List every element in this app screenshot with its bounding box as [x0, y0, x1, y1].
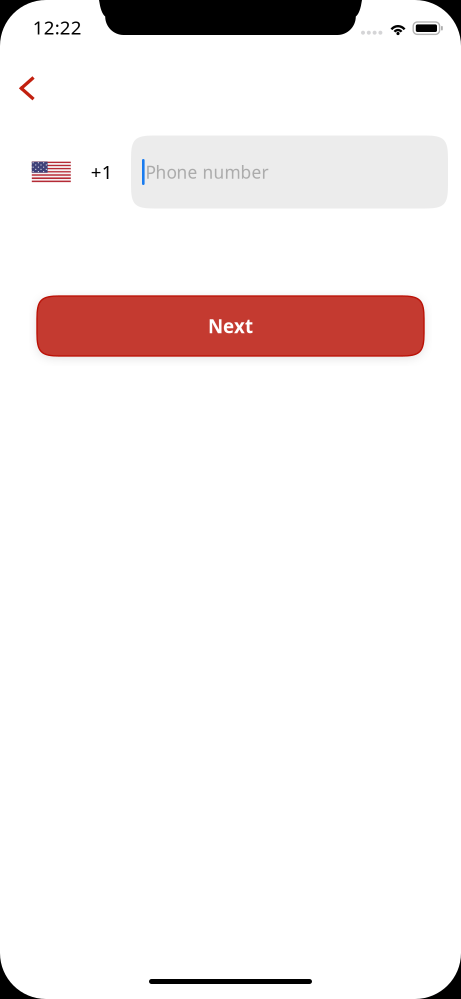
button[interactable]: Back: [3, 66, 51, 110]
staticText: Next: [208, 314, 253, 338]
button[interactable]: Next: [37, 296, 424, 356]
staticText: +1: [91, 159, 113, 184]
staticText: 12:22: [33, 15, 82, 40]
staticText: Phone number: [146, 160, 269, 183]
